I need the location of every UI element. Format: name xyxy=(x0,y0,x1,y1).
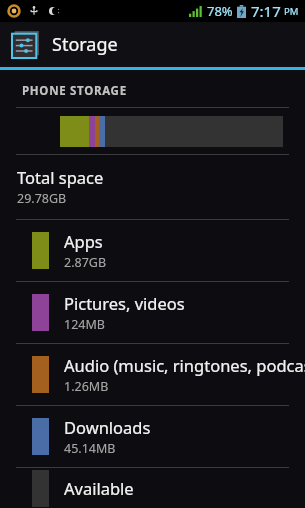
button[interactable]: Pictures, videos xyxy=(0,282,305,343)
staticText: 78% xyxy=(207,2,233,20)
staticText: 1.26MB xyxy=(64,378,109,395)
staticText: PM xyxy=(284,5,299,18)
staticText: Pictures, videos xyxy=(64,292,185,314)
button[interactable]: Audio (music, ringtones, podcasts) xyxy=(0,344,305,405)
staticText: Storage xyxy=(52,32,118,57)
button[interactable]: Available xyxy=(0,468,305,508)
staticText: Apps xyxy=(64,230,103,252)
staticText: 45.14MB xyxy=(64,440,116,457)
staticText: 29.78GB xyxy=(17,190,67,207)
other: Settings xyxy=(12,31,39,58)
staticText: 2.87GB xyxy=(64,254,107,271)
staticText: Downloads xyxy=(64,416,151,438)
staticText: Audio (music, ringtones, podcasts) xyxy=(64,354,305,376)
button[interactable]: Apps xyxy=(0,220,305,281)
staticText: Available xyxy=(64,477,134,499)
staticText: Total space xyxy=(17,166,104,188)
staticText: 124MB xyxy=(64,316,105,333)
staticText: 7:17 xyxy=(251,1,281,21)
button[interactable]: Settings xyxy=(0,22,305,67)
staticText: PHONE STORAGE xyxy=(22,83,127,99)
button[interactable]: Downloads xyxy=(0,406,305,467)
